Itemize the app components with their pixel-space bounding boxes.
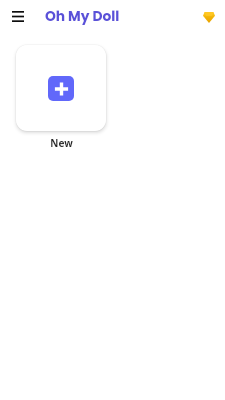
button[interactable]: Gems xyxy=(195,3,222,30)
button[interactable]: Menu xyxy=(4,3,31,30)
staticText: New xyxy=(50,136,73,150)
staticText: Oh My Doll xyxy=(45,7,120,26)
button[interactable] xyxy=(16,45,106,131)
